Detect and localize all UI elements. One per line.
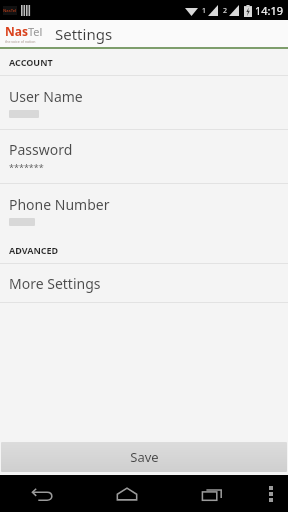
staticText: Password: [9, 140, 73, 159]
button[interactable]: User Name: [0, 76, 288, 129]
staticText: User Name: [9, 87, 83, 106]
staticText: Save: [130, 448, 159, 466]
button[interactable]: More options: [254, 475, 288, 512]
staticText: ADVANCED: [9, 244, 59, 256]
staticText: 14:19: [255, 3, 284, 18]
staticText: Settings: [55, 24, 113, 44]
staticText: Phone Number: [9, 195, 110, 214]
staticText: Nas: [5, 23, 28, 39]
button[interactable]: Password: [0, 130, 288, 183]
staticText: NasTel: [3, 8, 17, 13]
staticText: More Settings: [9, 274, 101, 293]
staticText: 2: [223, 6, 228, 16]
button[interactable]: Nas: [5, 23, 43, 44]
button[interactable]: Save: [1, 442, 287, 472]
button[interactable]: Phone Number: [0, 184, 288, 237]
button[interactable]: Recent apps: [169, 475, 254, 512]
staticText: ACCOUNT: [9, 56, 53, 68]
staticText: Tel: [28, 24, 43, 39]
button[interactable]: More Settings: [0, 264, 288, 302]
staticText: 1: [202, 6, 207, 16]
button[interactable]: Back: [0, 475, 84, 512]
staticText: *******: [9, 161, 44, 173]
staticText: the voice of nation: [5, 39, 36, 44]
button[interactable]: Home: [84, 475, 169, 512]
